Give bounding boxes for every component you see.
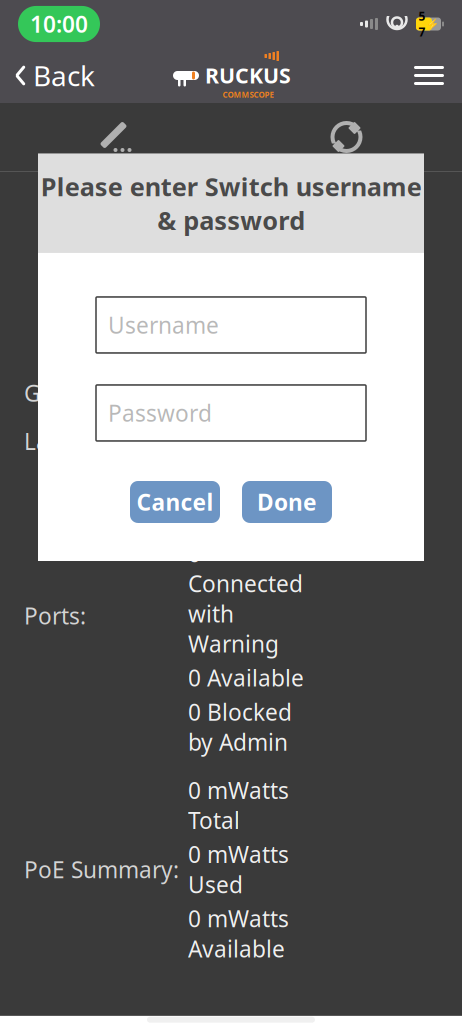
staticText: 0 Connected [188,474,303,534]
staticText: 0 mWatts Used [188,839,289,899]
button[interactable]: Refresh [311,103,381,171]
staticText: Gateway: [24,378,123,408]
button[interactable]: Cancel [130,481,220,523]
staticText: Done [257,487,317,517]
staticText: N/A [188,426,227,456]
staticText: 0 Available [188,663,304,693]
button[interactable]: Edit [80,103,150,171]
staticText: COMMSCOPE [222,89,273,100]
staticText: Cancel [136,487,213,517]
staticText: Please enter Switch username & password [40,170,421,237]
staticText: Username [108,310,219,340]
staticText: Ports: [24,601,86,631]
staticText: 57 [418,8,425,40]
staticText: Back [33,57,95,94]
button[interactable]: Done [242,481,332,523]
button[interactable]: Back [0,48,109,103]
staticText: 0 Blocked by Admin [188,697,292,757]
staticText: RUCKUS [205,61,291,89]
staticText: Unknown [188,378,290,408]
staticText: 0 mWatts Total [188,775,289,835]
staticText: 0 mWatts Available [188,903,289,964]
staticText: Last seen: [24,426,131,456]
staticText: 0 Connected with Warning [188,538,303,659]
staticText: Password [108,398,212,428]
staticText: ⚡ [425,18,438,30]
button[interactable]: Menu [396,48,462,103]
staticText: ICX7150-C12 Router [92,200,370,239]
staticText: PoE Summary: [24,854,179,884]
staticText: 10:00 [30,9,88,39]
